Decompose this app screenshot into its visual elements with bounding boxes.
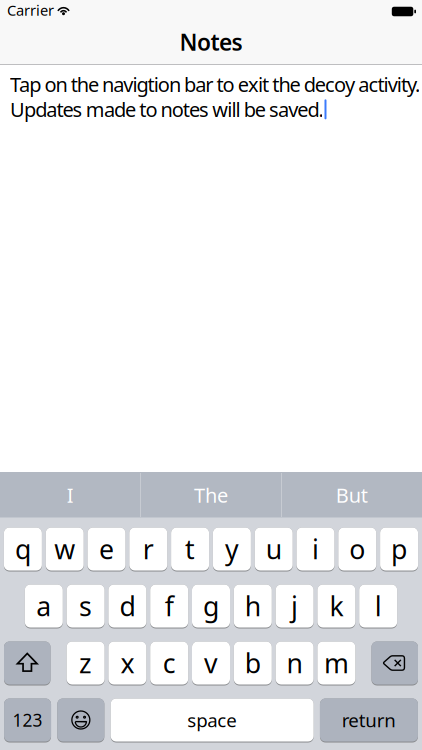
button[interactable]: z xyxy=(67,641,105,685)
button[interactable]: Shift xyxy=(4,641,50,685)
button[interactable]: k xyxy=(317,584,355,628)
staticText: But xyxy=(336,482,368,508)
staticText: c xyxy=(163,645,176,681)
staticText: w xyxy=(54,531,75,567)
button[interactable]: return xyxy=(320,698,418,742)
button[interactable]: g xyxy=(192,584,230,628)
button[interactable]: h xyxy=(234,584,272,628)
button[interactable]: s xyxy=(67,584,105,628)
button[interactable]: b xyxy=(234,641,272,685)
button[interactable]: u xyxy=(255,527,293,571)
button[interactable]: d xyxy=(108,584,146,628)
button[interactable]: j xyxy=(276,584,314,628)
button[interactable]: a xyxy=(25,584,63,628)
staticText: t xyxy=(185,531,195,567)
staticText: o xyxy=(349,531,365,567)
button[interactable]: p xyxy=(380,527,418,571)
button[interactable]: Emoji xyxy=(57,698,104,742)
staticText: return xyxy=(342,708,396,732)
staticText: s xyxy=(79,588,92,624)
staticText: y xyxy=(225,531,239,567)
button[interactable]: I xyxy=(0,472,141,518)
button[interactable]: w xyxy=(46,527,84,571)
button[interactable]: q xyxy=(4,527,42,571)
staticText: space xyxy=(187,708,237,732)
staticText: I xyxy=(67,482,74,508)
button[interactable]: space xyxy=(111,698,314,742)
button[interactable]: v xyxy=(192,641,230,685)
staticText: z xyxy=(79,645,92,681)
staticText: e xyxy=(99,531,114,567)
staticText: b xyxy=(245,645,261,681)
staticText: h xyxy=(245,588,261,624)
staticText: k xyxy=(329,588,343,624)
button[interactable]: The xyxy=(141,472,281,518)
staticText: l xyxy=(375,588,382,624)
button[interactable]: c xyxy=(150,641,188,685)
staticText: j xyxy=(291,588,298,624)
button[interactable]: i xyxy=(296,527,334,571)
button[interactable]: Delete xyxy=(371,641,418,685)
staticText: The xyxy=(194,482,228,508)
staticText: Notes xyxy=(179,27,242,57)
button[interactable]: e xyxy=(87,527,125,571)
staticText: g xyxy=(203,588,219,624)
staticText: f xyxy=(165,588,174,624)
button[interactable]: n xyxy=(276,641,314,685)
staticText: q xyxy=(15,531,31,567)
staticText: n xyxy=(287,645,303,681)
button[interactable]: x xyxy=(108,641,146,685)
button[interactable]: t xyxy=(171,527,209,571)
button[interactable]: m xyxy=(317,641,355,685)
staticText: u xyxy=(266,531,282,567)
staticText: d xyxy=(119,588,135,624)
staticText: 123 xyxy=(13,708,43,731)
staticText: Tap on the navigtion bar to exit the dec… xyxy=(10,71,420,98)
staticText: a xyxy=(36,588,51,624)
staticText: v xyxy=(204,645,218,681)
staticText: i xyxy=(312,531,319,567)
button[interactable]: Notes xyxy=(0,20,422,64)
staticText: p xyxy=(391,531,407,567)
button[interactable]: f xyxy=(150,584,188,628)
staticText: Carrier xyxy=(7,0,54,20)
staticText: x xyxy=(120,645,134,681)
button[interactable]: y xyxy=(213,527,251,571)
button[interactable]: r xyxy=(129,527,167,571)
button[interactable]: But xyxy=(281,472,422,518)
button[interactable]: o xyxy=(338,527,376,571)
button[interactable]: l xyxy=(359,584,397,628)
staticText: r xyxy=(143,531,154,567)
button[interactable]: 123 xyxy=(4,698,51,742)
staticText: Updates made to notes will be saved. xyxy=(10,96,323,123)
staticText: m xyxy=(324,645,349,681)
